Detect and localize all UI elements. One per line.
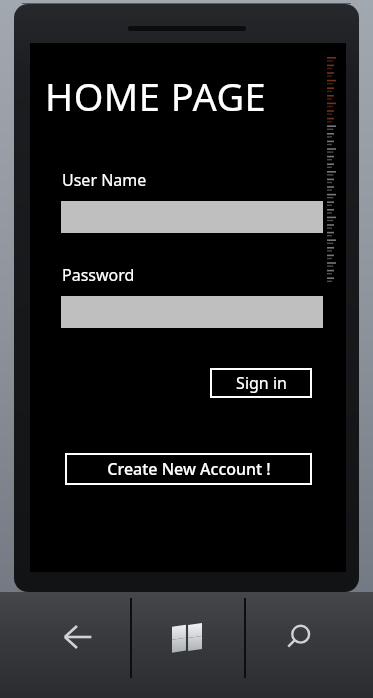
staticText: Sign in [236, 372, 287, 394]
button[interactable]: Home [150, 606, 224, 668]
button[interactable]: Search [262, 606, 336, 668]
staticText: User Name [62, 169, 147, 191]
button[interactable]: Back [40, 606, 114, 668]
staticText: Create New Account ! [107, 458, 271, 480]
button[interactable]: Sign in [210, 368, 312, 398]
staticText: HOME PAGE [45, 70, 267, 122]
staticText: Password [62, 264, 135, 286]
button[interactable]: Create New Account ! [65, 453, 312, 485]
